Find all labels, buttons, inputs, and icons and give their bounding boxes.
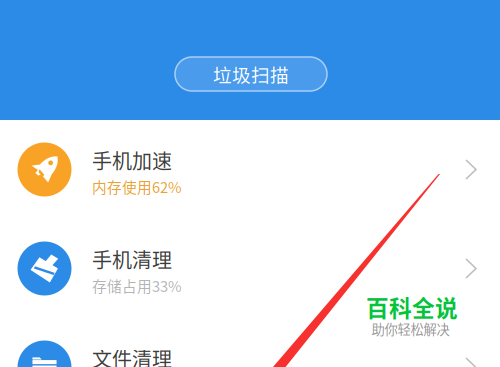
button[interactable]: 手机清理 [0,219,500,318]
staticText: 存储占用33% [92,275,182,296]
staticText: 手机加速 [92,145,172,174]
button[interactable]: 文件清理 [0,318,500,367]
staticText: 助你轻松解决 [371,319,449,338]
staticText: 垃圾扫描 [213,60,289,87]
button[interactable]: 垃圾扫描 [175,57,327,91]
button[interactable]: 手机加速 [0,120,500,219]
staticText: 百科全说 [366,290,458,323]
staticText: 内存使用62% [92,176,182,197]
staticText: 手机清理 [92,244,172,273]
staticText: 文件清理 [92,343,172,367]
